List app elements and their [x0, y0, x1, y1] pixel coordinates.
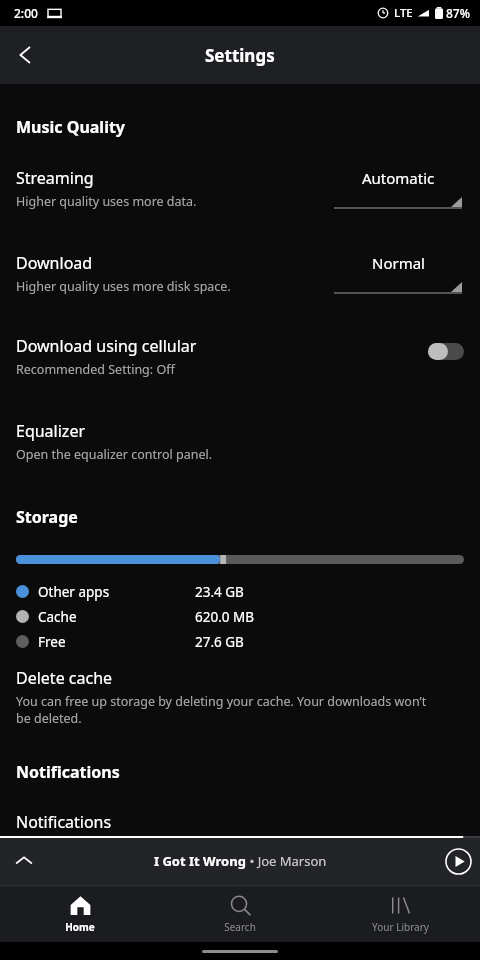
staticText: Open the equalizer control panel. — [16, 446, 213, 463]
staticText: Free — [38, 633, 66, 651]
staticText: Normal — [372, 253, 425, 273]
button[interactable]: Notifications — [0, 811, 480, 836]
staticText: 2:00 — [14, 5, 38, 21]
staticText: 620.0 MB — [195, 608, 255, 626]
button[interactable]: Download using cellular — [0, 335, 480, 378]
button[interactable]: Play — [436, 839, 480, 883]
staticText: Higher quality uses more disk space. — [16, 278, 231, 295]
staticText: Music Quality — [16, 116, 125, 138]
staticText: • Joe Marson — [246, 852, 327, 870]
button[interactable]: Home — [0, 886, 160, 942]
button[interactable]: Equalizer — [0, 420, 480, 463]
staticText: 27.6 GB — [195, 633, 244, 651]
staticText: Recommended Setting: Off — [16, 361, 175, 378]
button[interactable]: Your Library — [320, 886, 480, 942]
button[interactable]: Download — [0, 252, 480, 295]
staticText: Delete cache — [16, 667, 113, 689]
staticText: Settings — [205, 44, 275, 67]
button[interactable]: Delete cache — [0, 667, 480, 727]
button[interactable]: Automatic — [334, 168, 462, 209]
button[interactable]: Search — [160, 886, 320, 942]
staticText: Home — [65, 920, 95, 934]
staticText: You can free up storage by deleting your… — [16, 693, 440, 727]
staticText: Cache — [38, 608, 77, 626]
staticText: Equalizer — [16, 420, 86, 442]
staticText: Notifications — [16, 811, 112, 833]
staticText: Download — [16, 252, 93, 274]
staticText: 87% — [446, 5, 470, 21]
staticText: Other apps — [38, 583, 110, 601]
button[interactable]: Normal — [334, 253, 462, 294]
staticText: LTE — [394, 5, 413, 21]
staticText: Higher quality uses more data. — [16, 193, 197, 210]
staticText: Your Library — [372, 920, 429, 934]
button[interactable]: Streaming — [0, 167, 480, 210]
button[interactable]: Expand player — [0, 837, 48, 885]
staticText: Notifications — [16, 761, 120, 783]
button[interactable]: Back — [0, 29, 52, 81]
staticText: Streaming — [16, 167, 94, 189]
staticText: I Got It Wrong — [154, 852, 246, 870]
staticText: Download using cellular — [16, 335, 197, 357]
staticText: Search — [224, 920, 256, 934]
staticText: Automatic — [362, 168, 435, 188]
staticText: 23.4 GB — [195, 583, 244, 601]
staticText: Storage — [16, 506, 78, 528]
